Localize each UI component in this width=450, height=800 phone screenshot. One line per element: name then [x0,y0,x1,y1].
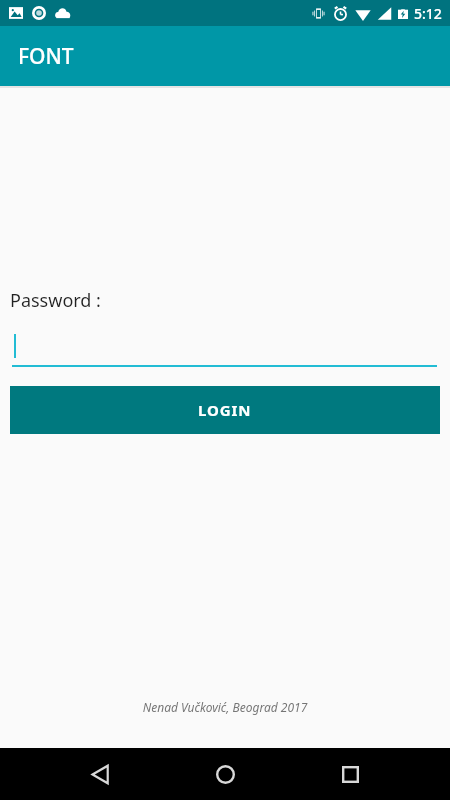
staticText: LOGIN [198,400,252,420]
staticText: Nenad Vučković, Beograd 2017 [0,699,450,715]
staticText: FONT [18,42,74,71]
staticText: 5:12 [414,4,442,23]
button[interactable]: Home [200,749,250,799]
button[interactable] [12,331,437,367]
button[interactable]: LOGIN [10,386,440,434]
button[interactable]: Back [75,749,125,799]
button[interactable]: Recent apps [325,749,375,799]
staticText: Password : [10,288,101,313]
